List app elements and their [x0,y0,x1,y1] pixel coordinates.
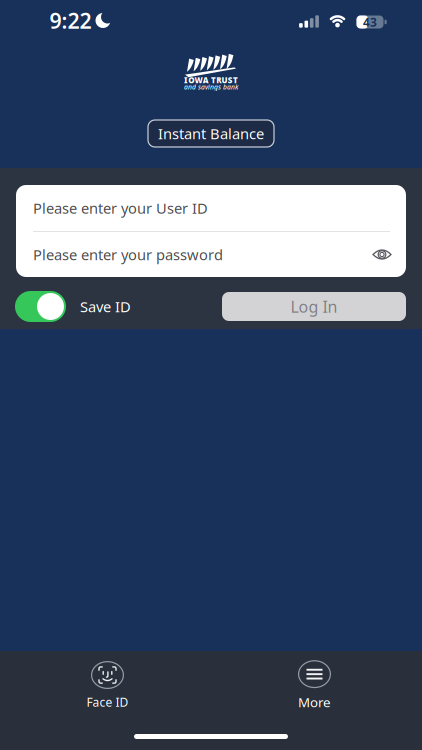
staticText: Instant Balance [158,124,264,143]
staticText: Please enter your User ID [33,198,208,218]
staticText: 43 [363,14,377,30]
button[interactable]: Save ID [15,291,131,322]
staticText: and savings bank [184,82,238,91]
staticText: Face ID [86,694,128,710]
button[interactable]: Instant Balance [148,120,274,147]
button[interactable]: Show password [372,248,392,261]
button[interactable]: Please enter your password [16,232,406,277]
button[interactable]: Face ID [86,661,128,710]
staticText: Log In [290,296,337,317]
staticText: 9:22 [49,6,91,35]
button[interactable]: Log In [222,292,406,321]
staticText: Save ID [80,297,131,316]
staticText: IOWA TRUST [184,75,238,85]
staticText: More [298,693,331,711]
staticText: Please enter your password [33,245,223,264]
button[interactable]: Please enter your User ID [16,185,406,231]
button[interactable]: More [298,660,331,711]
